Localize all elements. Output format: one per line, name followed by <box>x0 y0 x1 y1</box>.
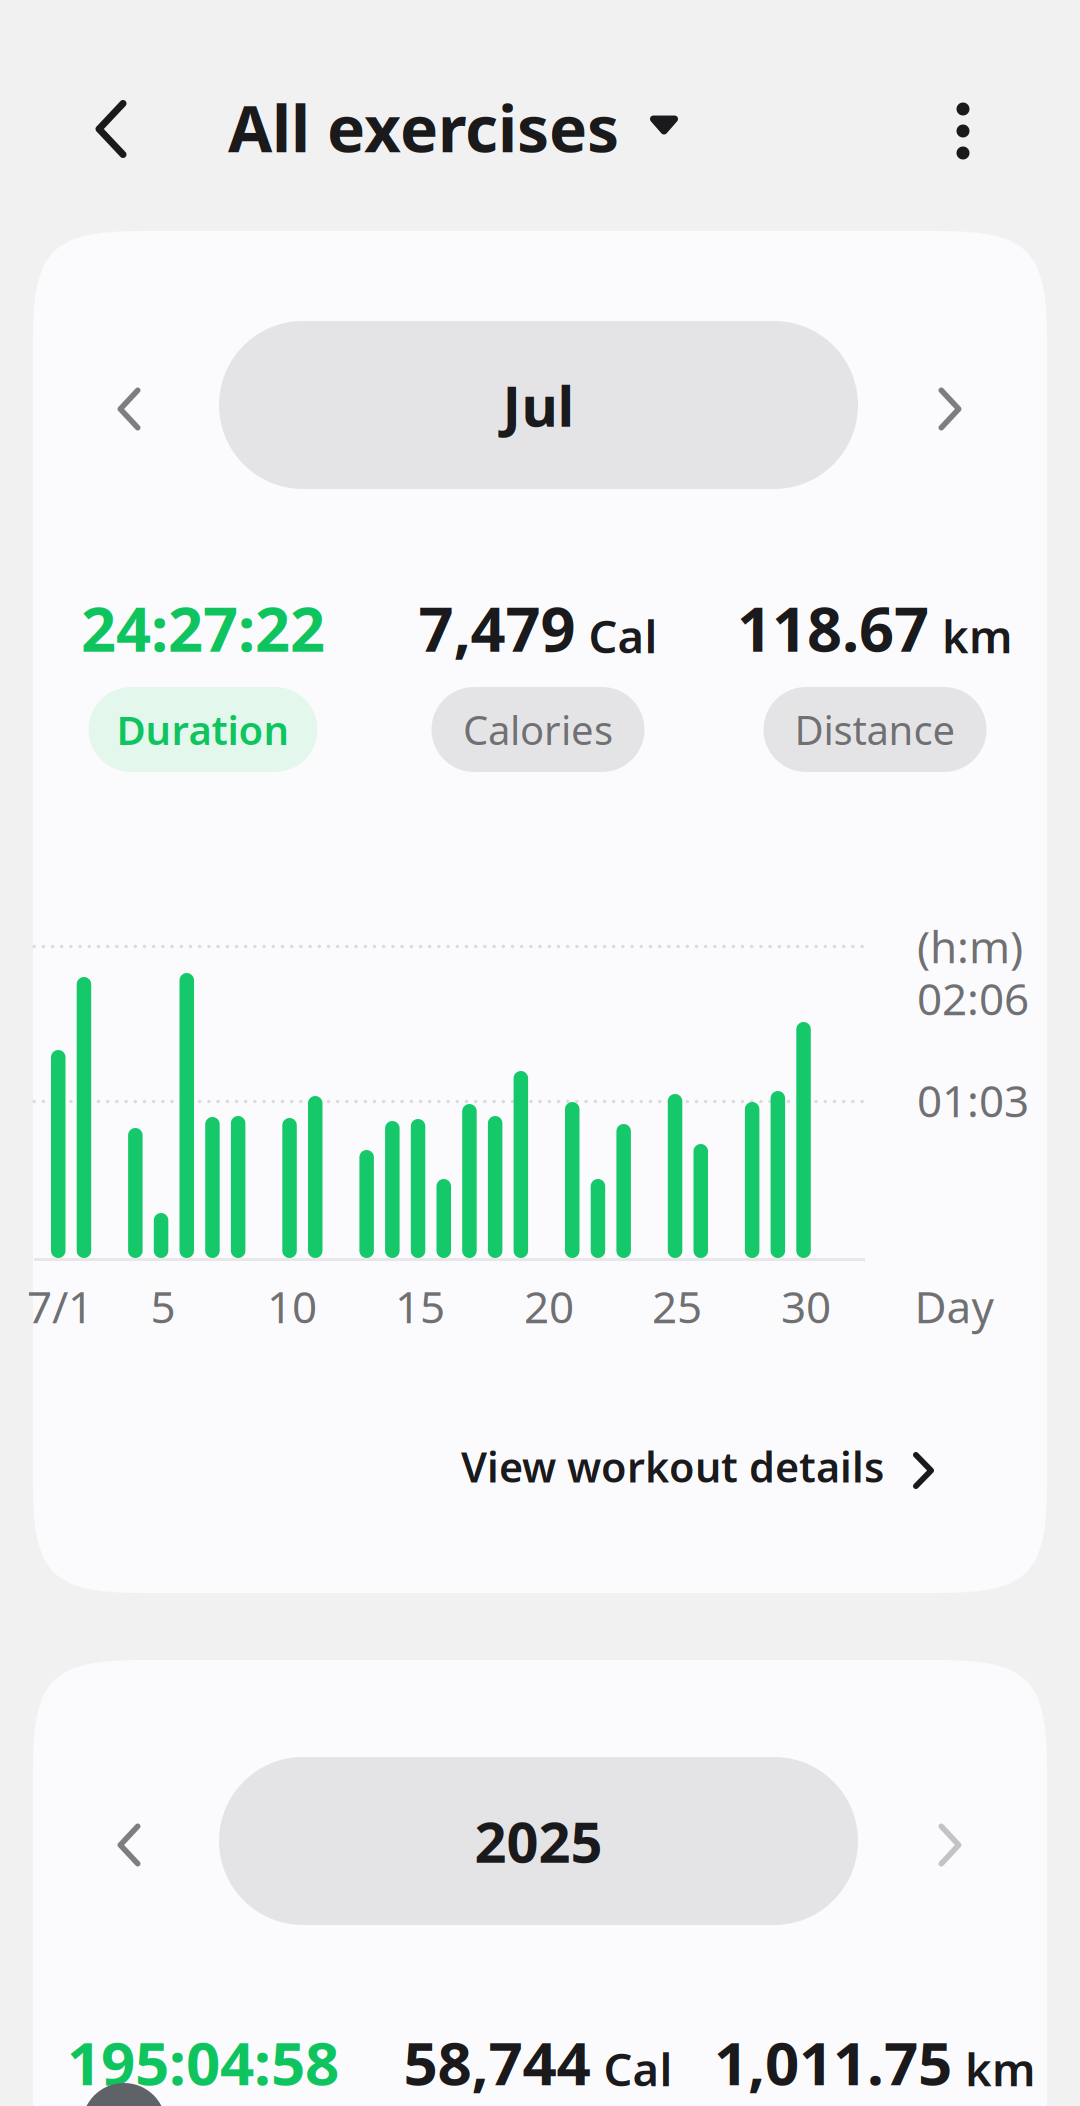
button[interactable]: Previous <box>74 325 184 493</box>
staticText: 15 <box>395 1277 445 1335</box>
button[interactable]: Calories <box>431 687 644 772</box>
staticText: 30 <box>781 1277 831 1335</box>
staticText: km <box>942 605 1013 666</box>
staticText: 02:06 <box>917 969 1029 1027</box>
button[interactable]: Duration <box>88 687 317 772</box>
staticText: 24:27:22 <box>81 587 325 669</box>
staticText: All exercises <box>228 85 619 170</box>
button[interactable]: 2025 <box>219 1757 858 1925</box>
staticText: 118.67 <box>737 587 929 669</box>
staticText: Day <box>914 1277 993 1335</box>
staticText: Calories <box>463 703 613 756</box>
button[interactable]: View workout details <box>33 1421 1047 1561</box>
staticText: Distance <box>794 703 955 756</box>
staticText: 01:03 <box>917 1071 1029 1129</box>
button[interactable]: Previous <box>74 1761 184 1929</box>
button[interactable]: Change exercise type <box>614 65 714 185</box>
staticText: 20 <box>524 1277 574 1335</box>
staticText: Duration <box>116 703 289 756</box>
staticText: View workout details <box>461 1439 884 1494</box>
staticText: 7/1 <box>27 1277 93 1335</box>
button[interactable]: Add workout <box>82 2083 166 2106</box>
staticText: (h:m) <box>917 917 1023 975</box>
staticText: 1,011.75 <box>714 2022 952 2102</box>
staticText: 195:04:58 <box>67 2022 339 2102</box>
staticText: 10 <box>267 1277 317 1335</box>
button[interactable]: Jul <box>219 321 858 489</box>
staticText: 7,479 <box>418 587 575 669</box>
staticText: Cal <box>588 605 657 666</box>
staticText: 58,744 <box>403 2022 590 2102</box>
staticText: km <box>965 2039 1036 2099</box>
button[interactable]: Back <box>51 64 171 194</box>
staticText: 5 <box>150 1277 175 1335</box>
staticText: Jul <box>502 368 574 442</box>
staticText: 2025 <box>474 1804 602 1878</box>
button[interactable]: Next <box>895 1761 1005 1929</box>
button[interactable]: More options <box>908 66 1018 196</box>
staticText: 25 <box>652 1277 702 1335</box>
staticText: Cal <box>603 2039 672 2099</box>
button[interactable]: Distance <box>763 687 986 772</box>
button[interactable]: Next <box>895 325 1005 493</box>
